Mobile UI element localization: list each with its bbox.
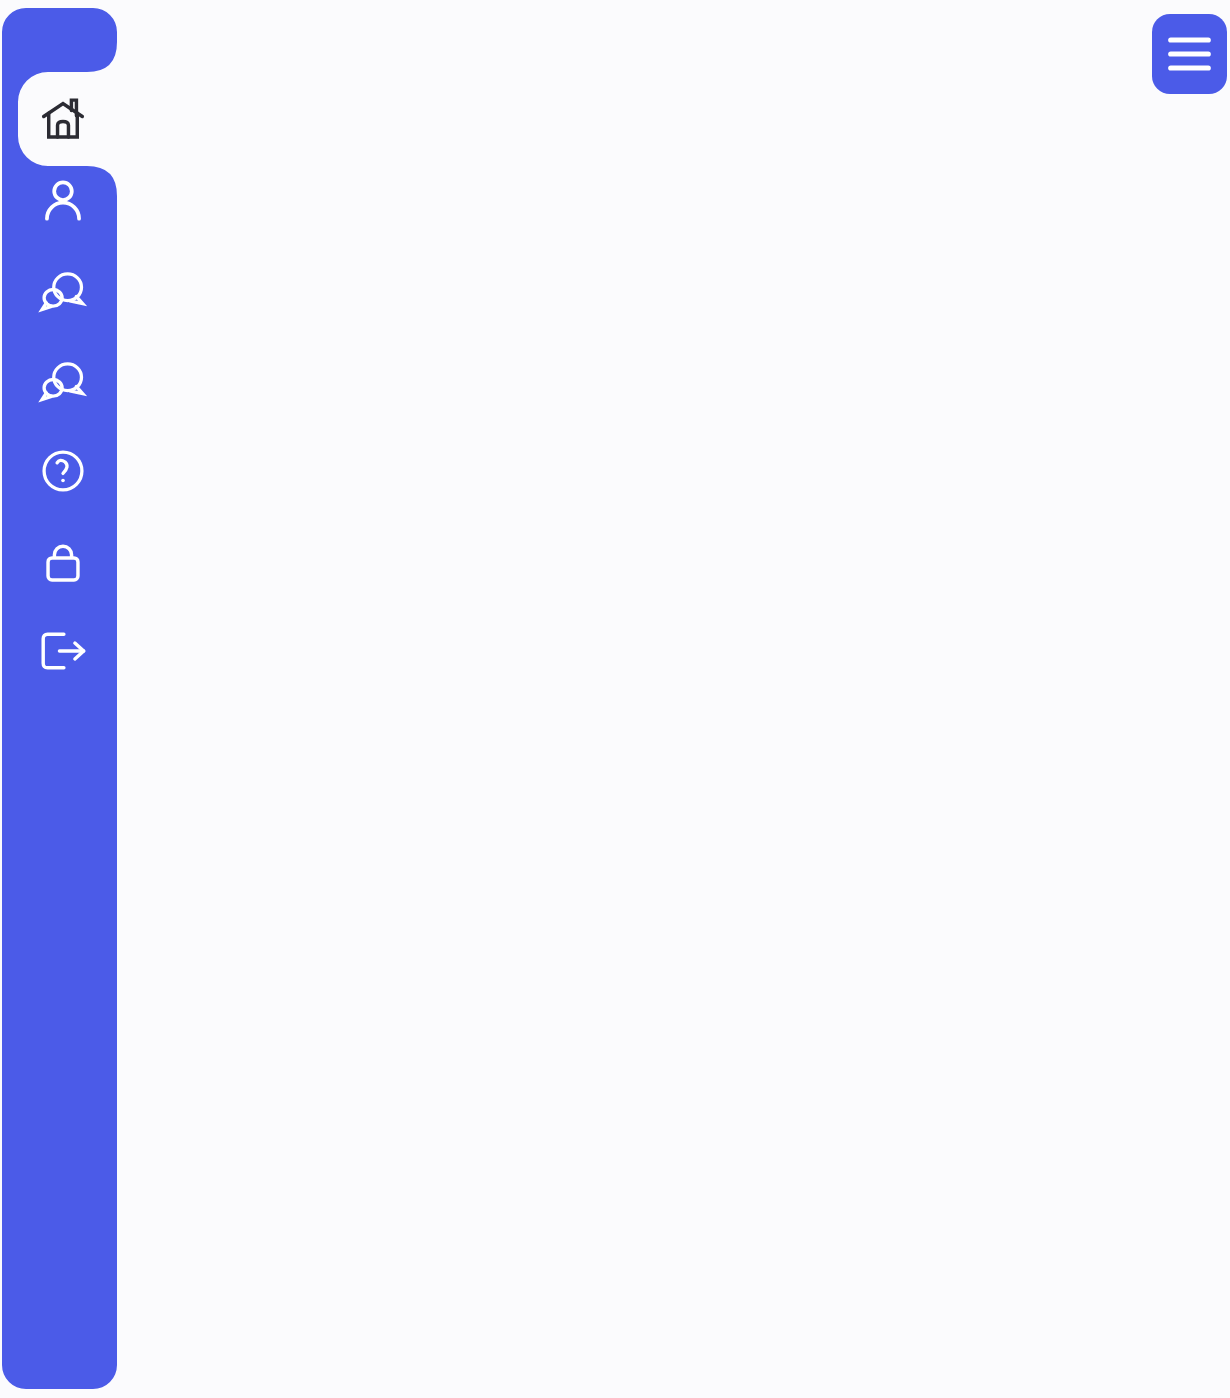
button[interactable]: Profile <box>27 166 99 238</box>
button[interactable]: Messages <box>27 255 99 327</box>
button[interactable]: Log out <box>27 615 99 687</box>
button[interactable]: Comments <box>27 345 99 417</box>
button[interactable]: Help <box>27 435 99 507</box>
button[interactable]: Home <box>18 72 117 166</box>
button[interactable]: Privacy <box>27 525 99 597</box>
button[interactable]: Menu <box>1152 14 1227 94</box>
